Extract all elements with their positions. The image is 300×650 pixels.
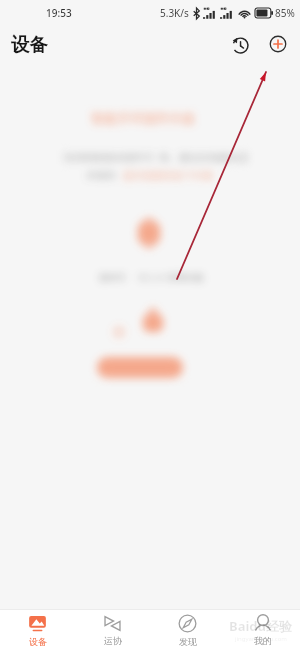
staticText: 我的 <box>254 635 272 646</box>
staticText: 19:53 <box>46 6 72 20</box>
staticText: 设备 <box>11 33 48 56</box>
staticText: 85% <box>275 6 295 20</box>
staticText: 5.3K/s <box>160 6 189 20</box>
button[interactable]: 运协 <box>75 610 150 650</box>
button[interactable]: 我的 <box>225 610 300 650</box>
staticText: jingyan.baidu.com <box>235 635 287 643</box>
button[interactable]: 设备 <box>0 610 75 650</box>
button[interactable]: 发现 <box>150 610 225 650</box>
staticText: Baidu经验 <box>229 617 292 635</box>
staticText: 运协 <box>104 635 122 646</box>
staticText: 发现 <box>179 636 197 647</box>
button[interactable]: History <box>226 31 252 57</box>
staticText: 设备 <box>29 636 47 647</box>
button[interactable]: Add device <box>265 31 291 57</box>
